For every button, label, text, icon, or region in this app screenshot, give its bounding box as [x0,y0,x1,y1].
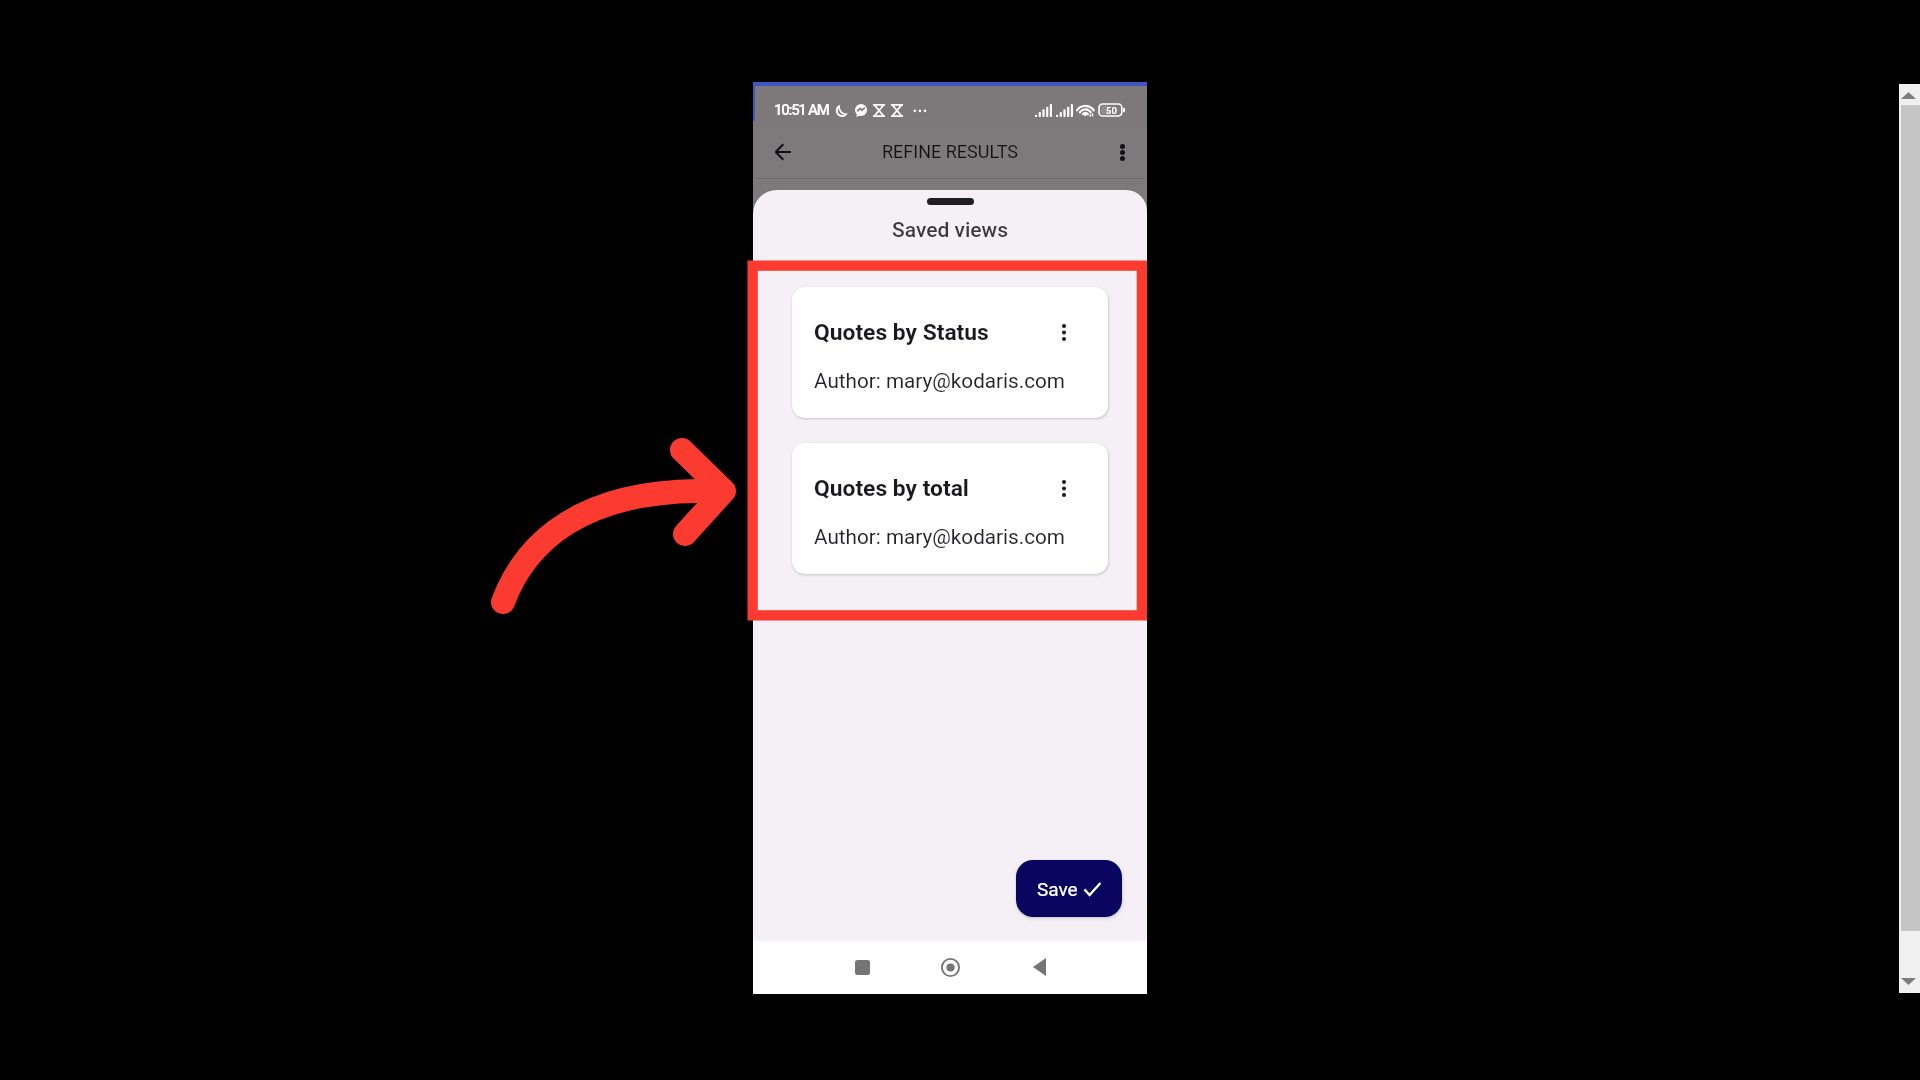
button[interactable]: Recents [842,947,882,987]
button[interactable]: Home [930,947,970,987]
button[interactable]: Options for Quotes by total [1050,475,1077,502]
staticText: Author: mary@kodaris.com [814,525,1065,549]
button[interactable]: Back [1019,947,1059,987]
button[interactable]: More options [1104,134,1140,170]
staticText: Quotes by total [814,475,969,502]
staticText: Saved views [753,218,1147,243]
button[interactable]: Back [765,134,801,170]
staticText: REFINE RESULTS [882,141,1018,162]
staticText: Author: mary@kodaris.com [814,369,1065,393]
staticText: Quotes by Status [814,319,989,346]
button[interactable]: Quotes by Status [792,287,1108,418]
button[interactable]: Options for Quotes by Status [1050,319,1077,346]
staticText: 50 [1106,105,1117,116]
button[interactable]: Save [1016,860,1122,917]
staticText: 10:51 AM [774,101,829,119]
staticText: Save [1037,878,1078,900]
button[interactable]: Quotes by total [792,443,1108,574]
